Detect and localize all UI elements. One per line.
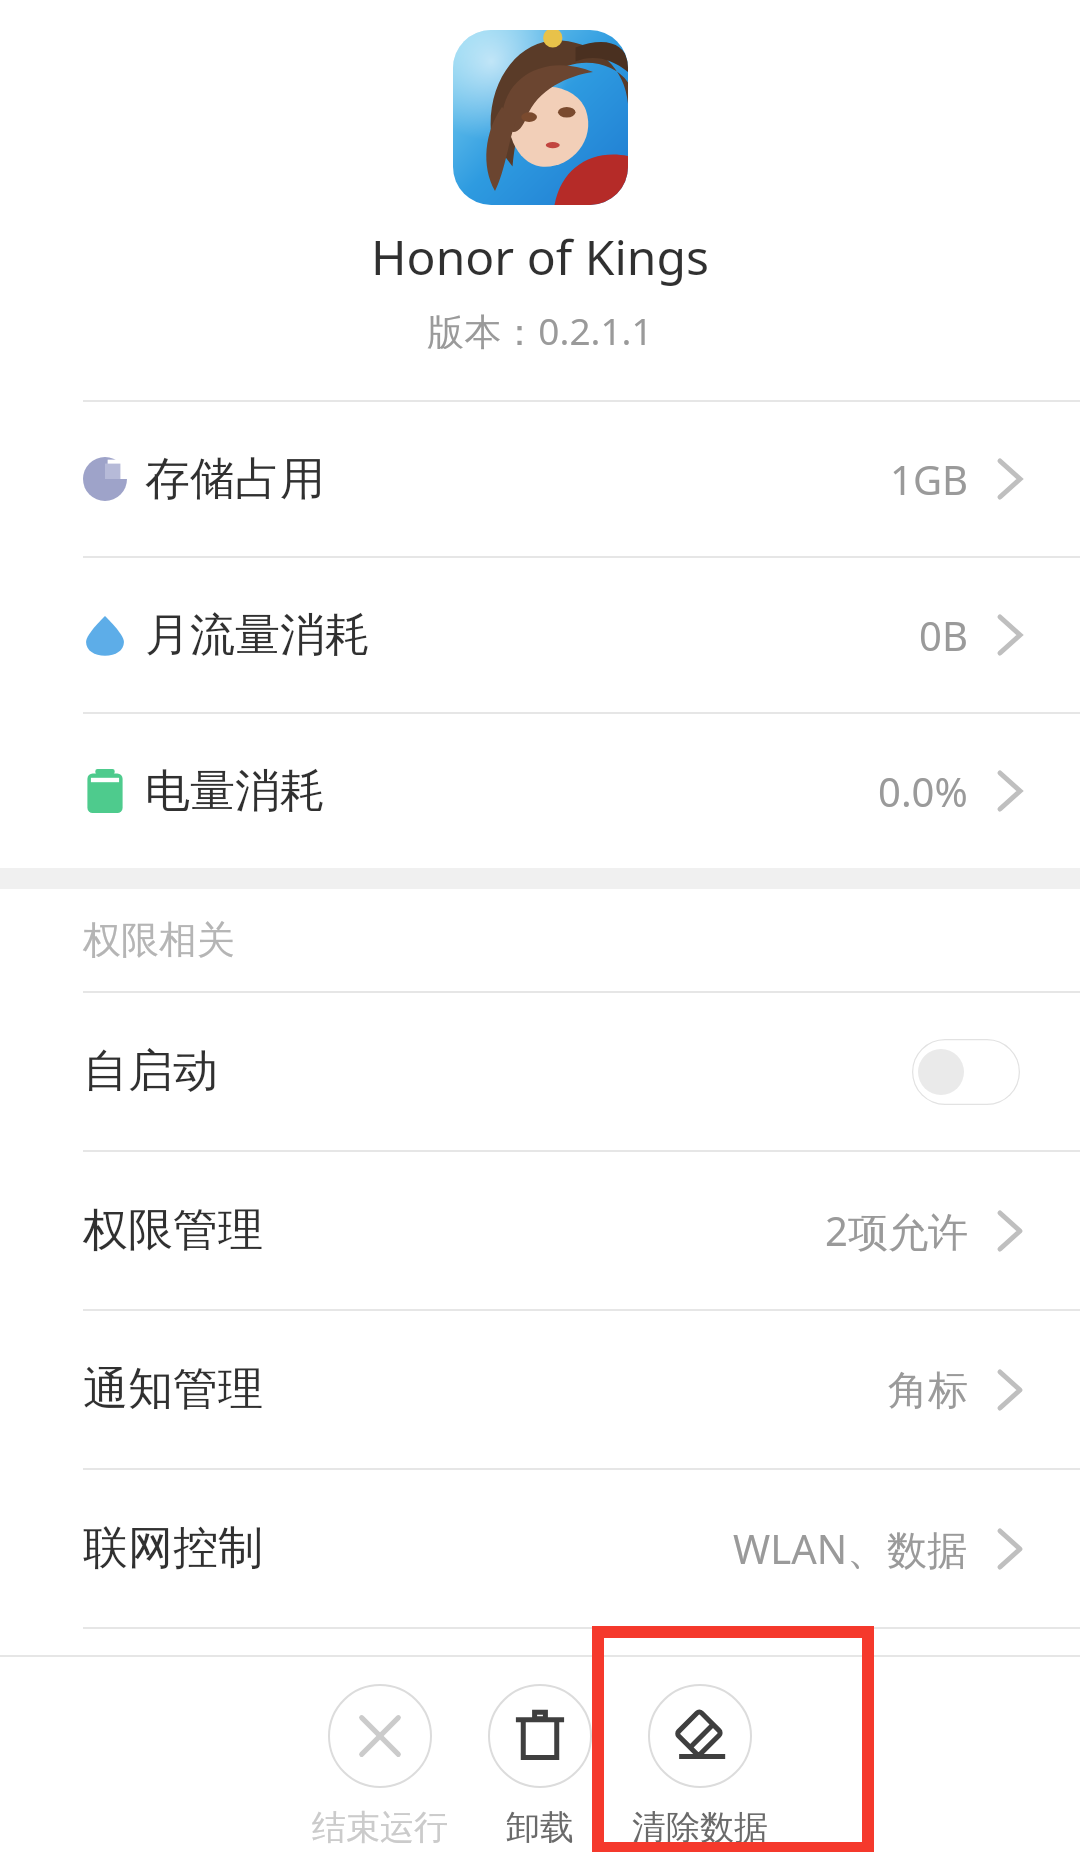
staticText: 电量消耗 — [145, 763, 325, 820]
staticText: 0.0% — [878, 764, 968, 818]
other: 结束运行 — [353, 1709, 407, 1763]
button[interactable]: 月流量消耗 — [0, 558, 1080, 712]
other: 卸载 — [513, 1709, 567, 1763]
button[interactable]: 电量消耗 — [0, 714, 1080, 868]
button[interactable]: 通知管理 — [0, 1311, 1080, 1468]
staticText: 版本：0.2.1.1 — [0, 305, 1080, 356]
staticText: 1GB — [890, 452, 968, 506]
button[interactable]: 存储占用 — [0, 402, 1080, 556]
other: 清除数据 — [673, 1709, 727, 1763]
staticText: 卸载 — [506, 1806, 574, 1849]
button[interactable]: 结束运行 — [310, 1684, 450, 1849]
button[interactable]: 权限管理 — [0, 1152, 1080, 1309]
staticText: 自启动 — [83, 1043, 218, 1100]
button[interactable]: 卸载 — [470, 1684, 610, 1849]
staticText: 清除数据 — [632, 1806, 768, 1849]
button[interactable]: Honor of Kings app icon — [453, 30, 628, 205]
staticText: 2项允许 — [825, 1203, 968, 1258]
staticText: 权限管理 — [83, 1202, 263, 1259]
staticText: 月流量消耗 — [145, 607, 370, 664]
button[interactable]: 自启动开关 — [912, 1039, 1020, 1105]
staticText: WLAN、数据 — [733, 1521, 968, 1576]
staticText: Honor of Kings — [0, 224, 1080, 289]
button[interactable]: 联网控制 — [0, 1470, 1080, 1627]
button[interactable]: 清除数据 — [630, 1684, 770, 1849]
staticText: 联网控制 — [83, 1520, 263, 1577]
staticText: 通知管理 — [83, 1361, 263, 1418]
staticText: 权限相关 — [83, 916, 235, 964]
button[interactable]: 自启动 — [0, 993, 1080, 1150]
staticText: 角标 — [888, 1365, 968, 1415]
staticText: 存储占用 — [145, 451, 325, 508]
staticText: 结束运行 — [312, 1806, 448, 1849]
staticText: 0B — [919, 608, 968, 662]
